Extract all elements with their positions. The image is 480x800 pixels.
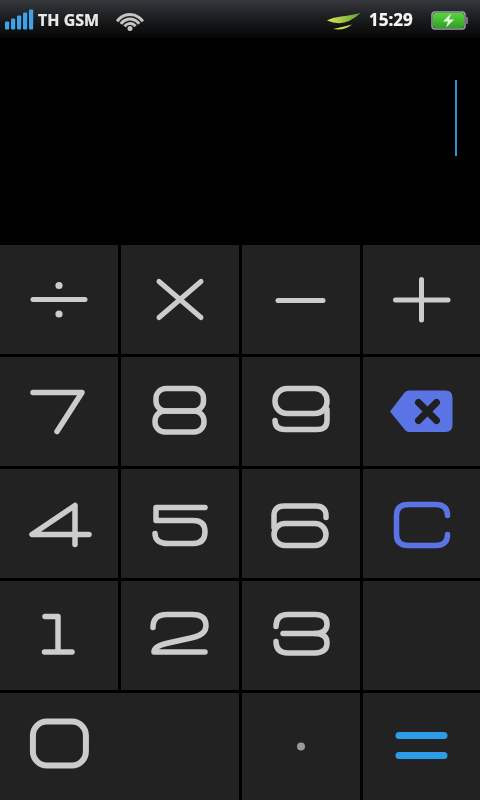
staticText: 15:29 — [369, 8, 413, 31]
button[interactable] — [121, 581, 239, 690]
button[interactable] — [242, 693, 360, 800]
button[interactable] — [121, 469, 239, 578]
button[interactable] — [242, 245, 360, 354]
button[interactable] — [242, 581, 360, 690]
staticText: TH GSM — [38, 9, 100, 31]
button[interactable] — [0, 38, 480, 245]
button[interactable] — [121, 357, 239, 466]
button[interactable] — [363, 469, 480, 578]
button[interactable] — [242, 357, 360, 466]
button[interactable] — [363, 357, 480, 466]
button[interactable] — [0, 469, 118, 578]
button[interactable] — [121, 245, 239, 354]
button[interactable] — [242, 469, 360, 578]
button[interactable] — [0, 245, 118, 354]
button[interactable] — [363, 245, 480, 354]
button[interactable] — [0, 581, 118, 690]
button[interactable] — [363, 693, 480, 800]
button[interactable] — [0, 357, 118, 466]
button[interactable] — [0, 693, 239, 800]
